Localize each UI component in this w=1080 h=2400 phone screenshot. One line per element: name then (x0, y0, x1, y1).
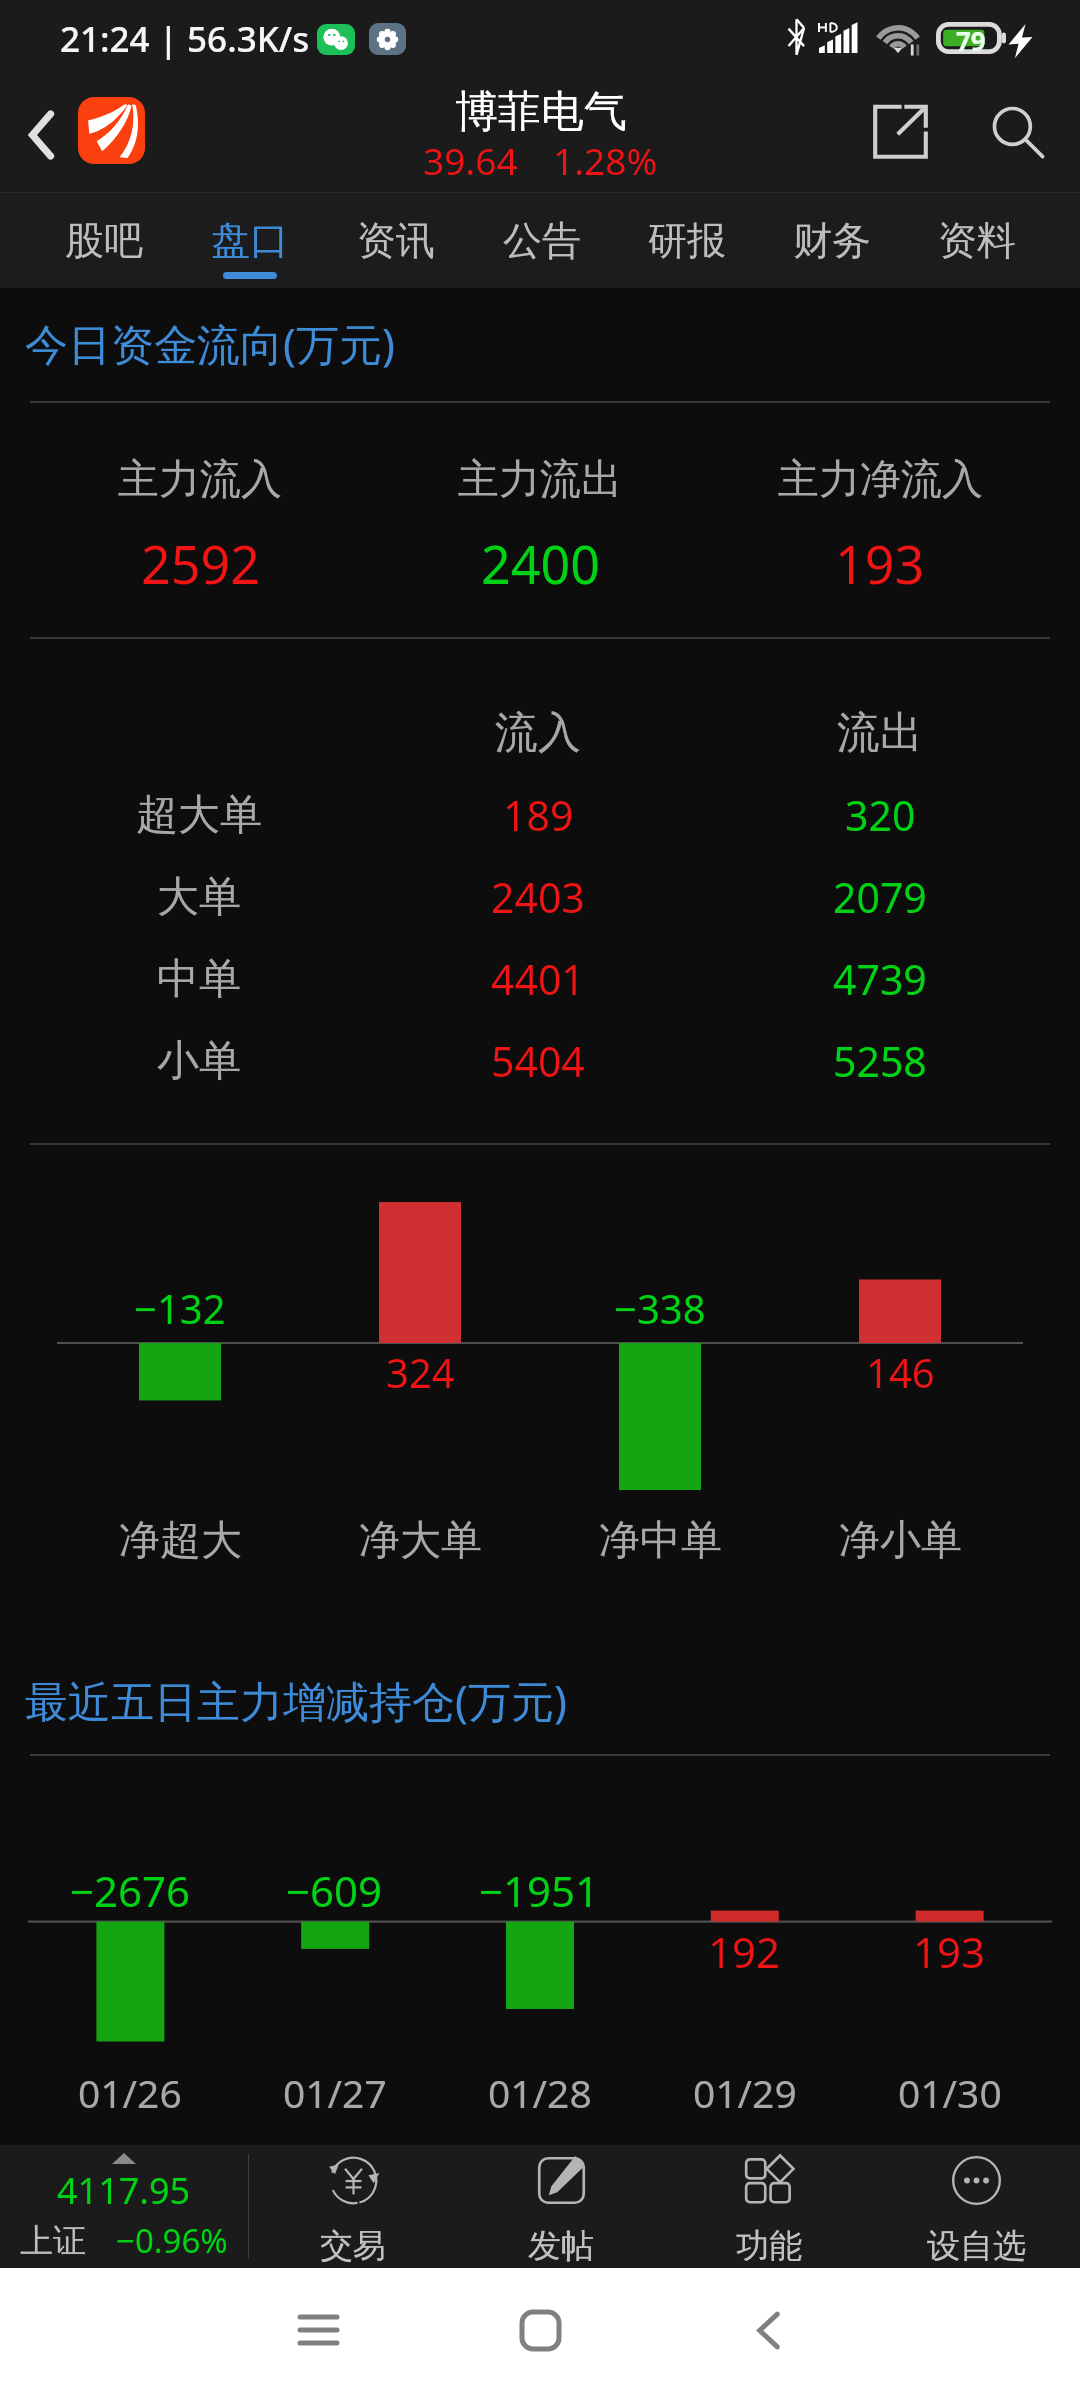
button[interactable]: Home (480, 2268, 600, 2400)
staticText: 主力净流入 (778, 454, 983, 506)
staticText: 小单 (157, 1035, 241, 1088)
staticText: 超大单 (136, 789, 262, 842)
staticText: 5258 (833, 1033, 927, 1089)
staticText: 流入 (495, 706, 581, 760)
button[interactable]: 发帖 (457, 2145, 665, 2268)
staticText: 净中单 (599, 1515, 722, 1567)
button[interactable]: Share (852, 78, 962, 192)
staticText: 发帖 (528, 2225, 594, 2267)
button[interactable]: 交易 (249, 2145, 457, 2268)
button[interactable]: Eastmoney logo (78, 97, 145, 164)
staticText: 净超大 (119, 1515, 242, 1567)
staticText: 21:24 | 56.3K/s (60, 15, 310, 63)
button[interactable]: 股吧 (31, 192, 177, 288)
staticText: 交易 (320, 2225, 386, 2267)
button[interactable]: 研报 (614, 192, 759, 288)
staticText: 192 (708, 1923, 781, 1980)
staticText: 净小单 (839, 1515, 962, 1567)
button[interactable]: Search (962, 78, 1074, 192)
staticText: 大单 (157, 871, 241, 924)
staticText: 01/30 (898, 2066, 1002, 2119)
staticText: 01/26 (78, 2066, 182, 2119)
button[interactable]: 盘口 (177, 192, 323, 288)
staticText: 2079 (833, 869, 927, 925)
staticText: −1951 (479, 1862, 600, 1919)
staticText: 39.64 (423, 135, 518, 185)
staticText: −609 (286, 1862, 383, 1919)
staticText: 博菲电气 (455, 85, 627, 139)
staticText: 4117.95 (57, 2166, 191, 2215)
staticText: 今日资金流向(万元) (25, 314, 395, 373)
staticText: 4739 (833, 951, 927, 1007)
button[interactable]: 4117.95 (0, 2145, 248, 2268)
staticText: 设自选 (927, 2225, 1026, 2267)
staticText: 189 (503, 787, 574, 843)
staticText: 01/27 (283, 2066, 387, 2119)
staticText: 公告 (503, 216, 581, 265)
staticText: −338 (614, 1281, 706, 1335)
staticText: 研报 (648, 216, 726, 265)
button[interactable]: 公告 (469, 192, 614, 288)
button[interactable]: Recents (258, 2268, 378, 2400)
staticText: 中单 (157, 953, 241, 1006)
staticText: 193 (913, 1923, 986, 1980)
staticText: 资料 (938, 216, 1016, 265)
staticText: 324 (386, 1345, 455, 1399)
staticText: 146 (866, 1345, 935, 1399)
staticText: 320 (845, 787, 916, 843)
staticText: 最近五日主力增减持仓(万元) (25, 1671, 567, 1730)
button[interactable]: 功能 (665, 2145, 873, 2268)
button[interactable]: 资料 (904, 192, 1049, 288)
staticText: 1.28% (553, 135, 658, 185)
staticText: 01/29 (693, 2066, 797, 2119)
staticText: 193 (835, 528, 925, 599)
staticText: 上证 (20, 2220, 86, 2262)
staticText: 股吧 (65, 216, 143, 265)
staticText: 盘口 (211, 216, 289, 265)
staticText: 主力流出 (458, 454, 622, 506)
staticText: 5404 (491, 1033, 585, 1089)
staticText: 4401 (491, 951, 585, 1007)
button[interactable]: Back (0, 78, 84, 192)
staticText: 2592 (141, 528, 260, 599)
staticText: −132 (134, 1281, 226, 1335)
staticText: 79 (956, 23, 986, 58)
staticText: 2403 (491, 869, 585, 925)
staticText: 主力流入 (118, 454, 282, 506)
staticText: 净大单 (359, 1515, 482, 1567)
staticText: 流出 (837, 706, 923, 760)
button[interactable]: 设自选 (873, 2145, 1080, 2268)
staticText: 财务 (793, 216, 871, 265)
button[interactable]: Back (708, 2268, 828, 2400)
button[interactable]: 资讯 (323, 192, 469, 288)
staticText: 2400 (481, 528, 600, 599)
button[interactable]: 财务 (759, 192, 904, 288)
staticText: 功能 (736, 2225, 802, 2267)
staticText: 01/28 (488, 2066, 592, 2119)
staticText: −2676 (70, 1862, 191, 1919)
staticText: −0.96% (116, 2218, 228, 2263)
staticText: 资讯 (357, 216, 435, 265)
